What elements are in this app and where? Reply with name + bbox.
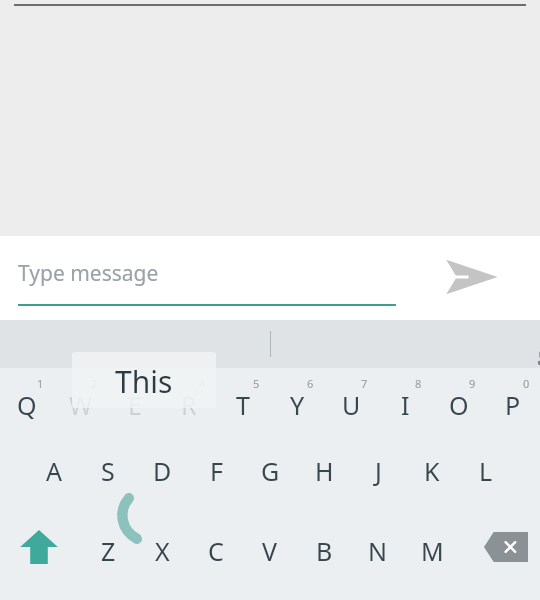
staticText: R xyxy=(181,388,197,422)
staticText: Type message xyxy=(18,259,159,288)
button[interactable]: L xyxy=(459,448,513,506)
staticText: L xyxy=(479,454,493,488)
button[interactable]: S xyxy=(81,448,135,506)
button[interactable]: F xyxy=(189,448,243,506)
button[interactable]: Send xyxy=(440,250,502,304)
button[interactable]: 7 xyxy=(324,368,378,430)
button[interactable]: X xyxy=(135,528,189,586)
staticText: 6 xyxy=(307,376,314,391)
staticText: G xyxy=(261,454,280,488)
staticText: T xyxy=(236,388,250,422)
button[interactable]: Shift xyxy=(8,526,70,584)
staticText: B xyxy=(316,534,333,568)
staticText: O xyxy=(449,388,469,422)
button[interactable]: 2 xyxy=(54,368,108,430)
staticText: 3 xyxy=(145,376,152,391)
button[interactable]: G xyxy=(243,448,297,506)
staticText: V xyxy=(262,534,278,568)
staticText: J xyxy=(375,454,382,488)
button[interactable]: N xyxy=(351,528,405,586)
staticText: Z xyxy=(101,534,116,568)
staticText: This xyxy=(115,361,173,402)
button[interactable]: 3 xyxy=(108,368,162,430)
staticText: D xyxy=(153,454,172,488)
button[interactable]: A xyxy=(27,448,81,506)
button[interactable]: 4 xyxy=(162,368,216,430)
staticText: 8 xyxy=(415,376,422,391)
button[interactable]: D xyxy=(135,448,189,506)
staticText: 0 xyxy=(523,376,530,391)
button[interactable]: J xyxy=(351,448,405,506)
staticText: S xyxy=(101,454,115,488)
staticText: K xyxy=(424,454,440,488)
button[interactable]: B xyxy=(297,528,351,586)
button[interactable]: V xyxy=(243,528,297,586)
button[interactable]: K xyxy=(405,448,459,506)
button[interactable]: M xyxy=(405,528,459,586)
staticText: P xyxy=(505,388,521,422)
staticText: 7 xyxy=(361,376,368,391)
button[interactable]: This xyxy=(72,352,216,408)
button[interactable]: 5 xyxy=(216,368,270,430)
staticText: 1 xyxy=(37,376,44,391)
staticText: 5 xyxy=(253,376,260,391)
staticText: M xyxy=(421,534,444,568)
staticText: F xyxy=(210,454,223,488)
button[interactable]: 0 xyxy=(486,368,540,430)
button[interactable]: 1 xyxy=(0,368,54,430)
staticText: H xyxy=(315,454,334,488)
button[interactable]: H xyxy=(297,448,351,506)
staticText: E xyxy=(128,388,142,422)
button[interactable]: 9 xyxy=(432,368,486,430)
staticText: I xyxy=(401,388,410,422)
staticText: A xyxy=(46,454,62,488)
staticText: Q xyxy=(17,388,37,422)
staticText: Y xyxy=(290,388,305,422)
staticText: U xyxy=(342,388,361,422)
staticText: W xyxy=(69,388,93,422)
staticText: N xyxy=(368,534,388,568)
button[interactable]: 6 xyxy=(270,368,324,430)
button[interactable]: 8 xyxy=(378,368,432,430)
staticText: 9 xyxy=(469,376,476,391)
button[interactable]: Type message xyxy=(18,248,396,306)
button[interactable]: Backspace xyxy=(478,526,534,584)
staticText: C xyxy=(208,534,224,568)
staticText: X xyxy=(155,534,170,568)
button[interactable]: Z xyxy=(81,528,135,586)
button[interactable]: C xyxy=(189,528,243,586)
